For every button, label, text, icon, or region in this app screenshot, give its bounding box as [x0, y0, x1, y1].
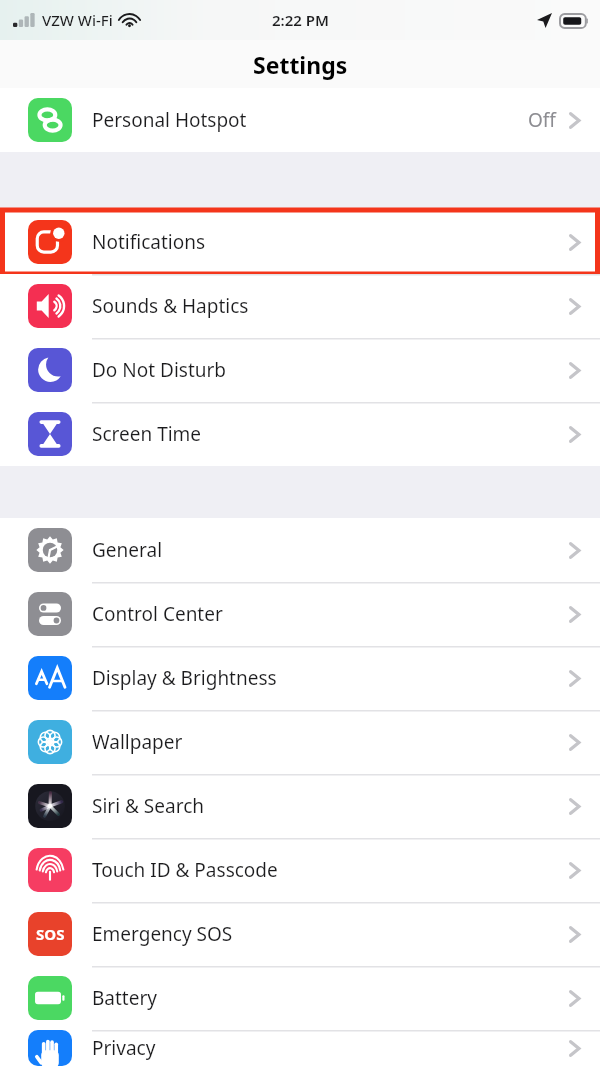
- staticText: Do Not Disturb: [92, 357, 227, 383]
- staticText: Emergency SOS: [92, 921, 233, 947]
- staticText: Personal Hotspot: [92, 107, 247, 133]
- staticText: VZW Wi-Fi: [42, 10, 113, 30]
- button[interactable]: SOS: [0, 902, 600, 966]
- button[interactable]: General: [0, 518, 600, 582]
- staticText: Battery: [92, 985, 157, 1011]
- staticText: Screen Time: [92, 421, 202, 447]
- staticText: Display & Brightness: [92, 665, 277, 691]
- button[interactable]: Display & Brightness: [0, 646, 600, 710]
- staticText: Settings: [253, 49, 348, 80]
- button[interactable]: Screen Time: [0, 402, 600, 466]
- staticText: General: [92, 537, 163, 563]
- staticText: Notifications: [92, 229, 206, 255]
- staticText: SOS: [36, 924, 65, 944]
- staticText: Control Center: [92, 601, 223, 627]
- staticText: Siri & Search: [92, 793, 205, 819]
- staticText: Off: [528, 107, 556, 133]
- button[interactable]: Touch ID & Passcode: [0, 838, 600, 902]
- button[interactable]: Wallpaper: [0, 710, 600, 774]
- button[interactable]: Privacy: [0, 1030, 600, 1066]
- button[interactable]: Notifications: [0, 210, 600, 274]
- button[interactable]: Control Center: [0, 582, 600, 646]
- button[interactable]: Battery: [0, 966, 600, 1030]
- button[interactable]: Do Not Disturb: [0, 338, 600, 402]
- button[interactable]: Personal Hotspot: [0, 88, 600, 152]
- staticText: Wallpaper: [92, 729, 183, 755]
- staticText: 2:22 PM: [272, 10, 329, 30]
- staticText: Sounds & Haptics: [92, 293, 249, 319]
- staticText: Privacy: [92, 1035, 156, 1061]
- staticText: Touch ID & Passcode: [92, 857, 278, 883]
- button[interactable]: Siri & Search: [0, 774, 600, 838]
- button[interactable]: Sounds & Haptics: [0, 274, 600, 338]
